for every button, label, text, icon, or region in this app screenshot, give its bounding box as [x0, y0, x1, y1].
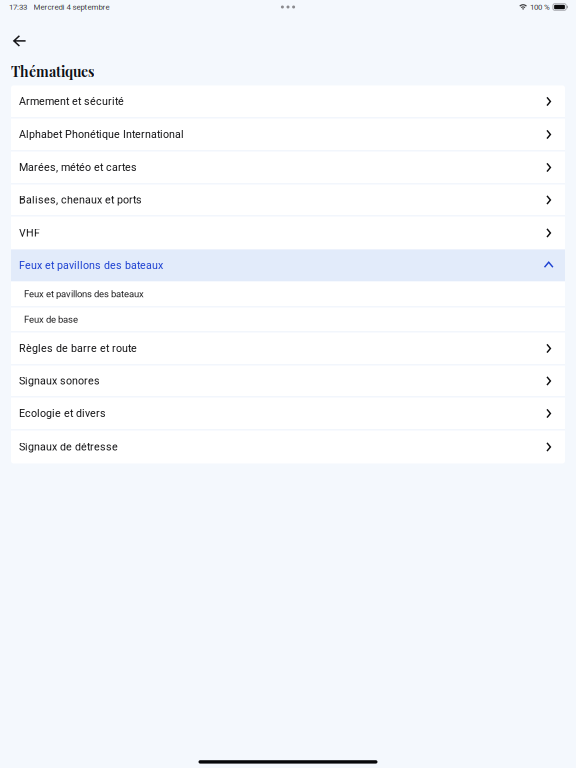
staticText: Signaux de détresse [19, 441, 118, 453]
button[interactable]: Feux et pavillons des bateaux [11, 281, 565, 306]
staticText: Thématiques [11, 62, 94, 80]
staticText: Ecologie et divers [19, 407, 106, 420]
button[interactable]: Marées, météo et cartes [11, 151, 565, 183]
staticText: Règles de barre et route [19, 342, 137, 355]
button[interactable]: Signaux de détresse [11, 430, 565, 463]
staticText: Feux et pavillons des bateaux [24, 288, 144, 299]
staticText: Mercredi 4 septembre [33, 2, 109, 12]
button[interactable]: Signaux sonores [11, 365, 565, 396]
button[interactable]: VHF [11, 216, 565, 249]
staticText: Feux et pavillons des bateaux [19, 259, 163, 272]
staticText: Alphabet Phonétique International [19, 128, 184, 141]
button[interactable]: Feux et pavillons des bateaux [11, 249, 565, 281]
button[interactable]: Ecologie et divers [11, 397, 565, 429]
button[interactable]: Balises, chenaux et ports [11, 184, 565, 215]
staticText: VHF [19, 227, 40, 239]
button[interactable]: Alphabet Phonétique International [11, 118, 565, 150]
button[interactable]: Armement et sécurité [11, 85, 565, 117]
staticText: Signaux sonores [19, 375, 100, 387]
staticText: Armement et sécurité [19, 95, 124, 108]
button[interactable]: Règles de barre et route [11, 332, 565, 364]
staticText: Balises, chenaux et ports [19, 194, 142, 206]
button[interactable]: Feux de base [11, 307, 565, 331]
staticText: 100 % [530, 2, 550, 12]
button[interactable]: Back [0, 27, 39, 55]
staticText: Marées, météo et cartes [19, 161, 137, 174]
staticText: 17:33 [9, 2, 27, 12]
staticText: Feux de base [24, 314, 78, 325]
